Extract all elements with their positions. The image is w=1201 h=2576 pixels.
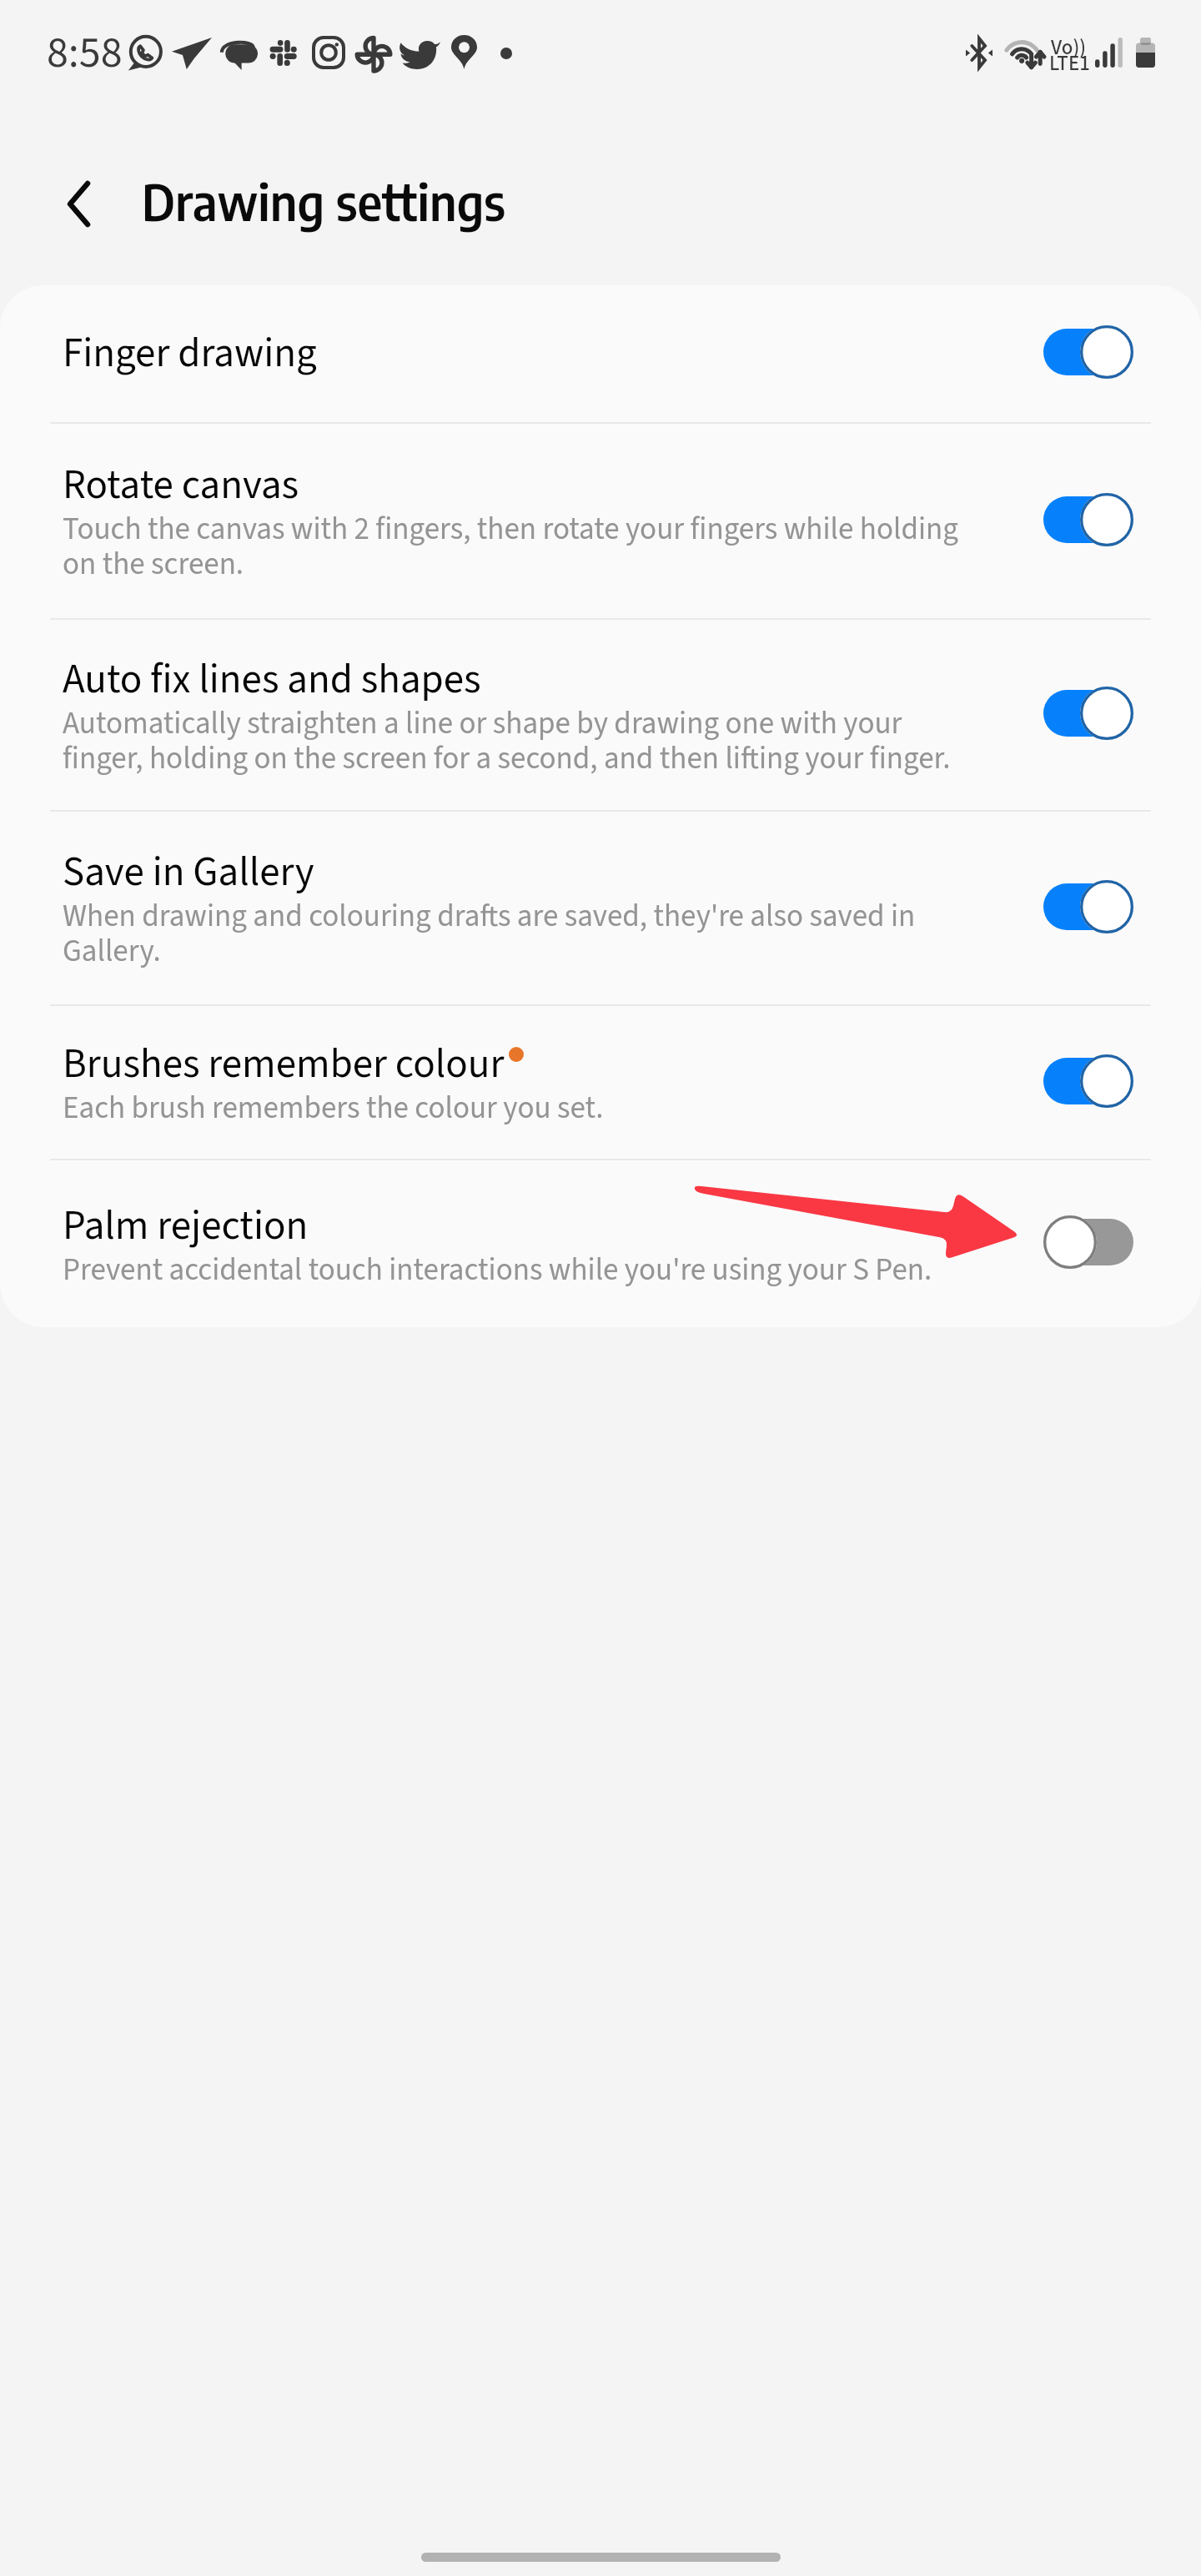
staticText: Touch the canvas with 2 fingers, then ro… — [63, 507, 972, 586]
staticText: When drawing and colouring drafts are sa… — [63, 894, 972, 974]
staticText: 8:58 — [47, 23, 123, 84]
staticText: Save in Gallery — [63, 843, 314, 902]
staticText: Finger drawing — [63, 325, 317, 383]
staticText: Each brush remembers the colour you set. — [63, 1086, 604, 1130]
button[interactable]: Brushes remember colour — [0, 1006, 1201, 1159]
staticText: Brushes remember colour — [63, 1035, 505, 1094]
staticText: Rotate canvas — [63, 456, 299, 515]
button[interactable]: Auto fix lines and shapes — [0, 620, 1201, 810]
button[interactable]: Navigate up — [38, 143, 118, 224]
staticText: Auto fix lines and shapes — [63, 651, 481, 709]
button[interactable]: Finger drawing — [0, 285, 1201, 422]
staticText: Vo)) — [1051, 33, 1087, 63]
staticText: Prevent accidental touch interactions wh… — [63, 1248, 932, 1292]
staticText: Automatically straighten a line or shape… — [63, 702, 972, 781]
staticText: LTE1 — [1049, 48, 1090, 78]
button[interactable]: Palm rejection — [0, 1160, 1201, 1327]
button[interactable]: Save in Gallery — [0, 812, 1201, 1004]
button[interactable]: Rotate canvas — [0, 424, 1201, 618]
staticText: Drawing settings — [142, 170, 506, 232]
staticText: Palm rejection — [63, 1197, 309, 1255]
